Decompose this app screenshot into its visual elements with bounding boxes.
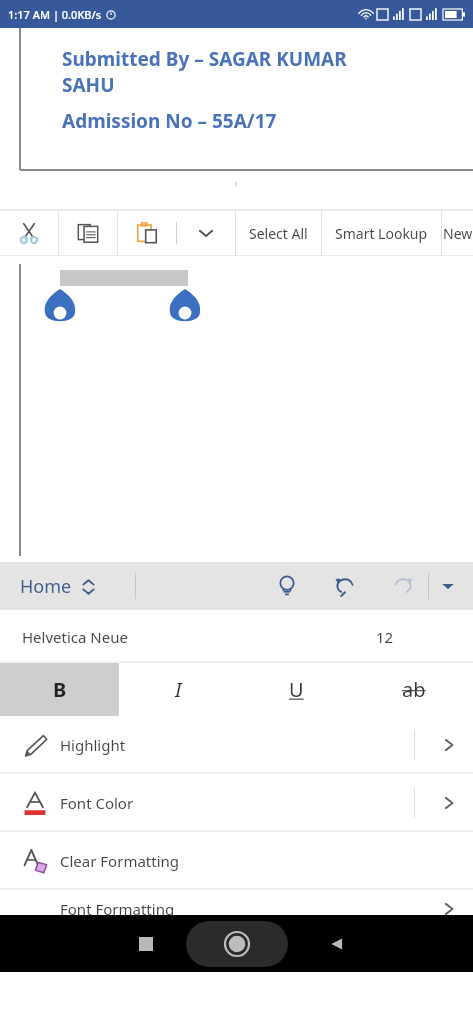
staticText: Smart Lookup	[335, 224, 428, 243]
staticText: I	[175, 676, 182, 703]
button[interactable]: Undo	[326, 567, 364, 605]
button[interactable]: Font Formatting	[0, 890, 473, 915]
staticText: SAHU	[62, 72, 115, 98]
staticText: Font Formatting	[60, 899, 175, 919]
staticText: B	[53, 676, 67, 703]
staticText: 1:17 AM | 0.0KB/s	[8, 7, 102, 22]
button[interactable]: B	[0, 663, 119, 716]
staticText: U	[289, 676, 304, 703]
staticText: Home	[20, 574, 72, 599]
button[interactable]: Home	[215, 922, 259, 966]
button[interactable]: Smart Lookup	[322, 210, 441, 256]
button[interactable]: Font Color	[0, 774, 473, 832]
staticText: Font Color	[60, 793, 134, 813]
button[interactable]: Copy	[59, 210, 117, 256]
staticText: 1	[234, 180, 239, 190]
button[interactable]: Redo	[384, 567, 422, 605]
staticText: Clear Formatting	[60, 851, 180, 871]
staticText: New	[443, 224, 473, 243]
button[interactable]: Select All	[236, 210, 321, 256]
button[interactable]: More options	[429, 567, 467, 605]
button[interactable]: More	[177, 210, 235, 256]
button[interactable]: Highlight	[0, 716, 473, 774]
button[interactable]: Back	[315, 922, 359, 966]
staticText: 12	[376, 627, 394, 647]
button[interactable]: Cut	[0, 210, 58, 256]
button[interactable]: Recents	[124, 922, 168, 966]
staticText: Admission No – 55A/17	[62, 108, 277, 134]
staticText: Submitted By – SAGAR KUMAR	[62, 46, 347, 72]
staticText: Highlight	[60, 735, 126, 755]
button[interactable]: New	[442, 210, 473, 256]
button[interactable]: I	[119, 663, 237, 716]
button[interactable]: ab	[355, 663, 473, 716]
button[interactable]: Paste	[118, 210, 176, 256]
button[interactable]: Clear Formatting	[0, 832, 473, 890]
staticText: Helvetica Neue	[22, 627, 128, 647]
staticText: ab	[402, 676, 426, 703]
button[interactable]: Tell me	[268, 567, 306, 605]
button[interactable]: Helvetica Neue	[0, 610, 473, 663]
button[interactable]: U	[237, 663, 355, 716]
staticText: Select All	[249, 224, 308, 243]
button[interactable]: Home	[20, 574, 95, 599]
